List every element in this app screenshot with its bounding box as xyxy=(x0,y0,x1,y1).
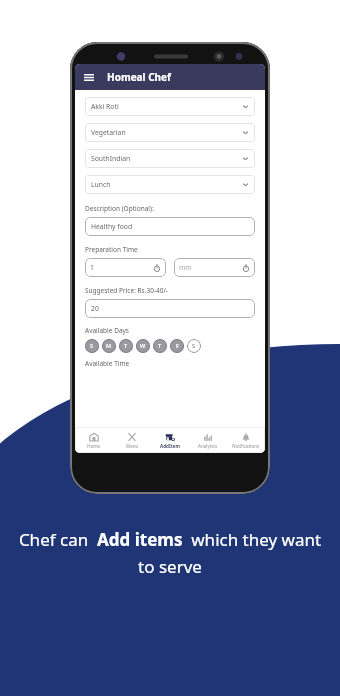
staticText: Lunch xyxy=(91,180,242,189)
staticText: Description (Optional): xyxy=(85,204,154,213)
button[interactable]: S xyxy=(187,339,201,353)
staticText: W xyxy=(140,342,146,350)
button[interactable]: 1 xyxy=(85,258,166,277)
staticText: Available Days xyxy=(85,326,129,335)
staticText: S xyxy=(90,342,94,350)
button[interactable]: S xyxy=(85,339,99,353)
staticText: Available Time xyxy=(85,359,130,368)
button[interactable]: mm xyxy=(174,258,255,277)
button[interactable]: SouthIndian xyxy=(85,149,255,168)
staticText: Homeal Chef xyxy=(107,70,171,84)
button[interactable]: Lunch xyxy=(85,175,255,194)
staticText: 1 xyxy=(90,263,153,272)
staticText: T xyxy=(158,342,162,350)
button[interactable]: Analytics xyxy=(189,427,227,453)
button[interactable]: Vegetarian xyxy=(85,123,255,142)
staticText: Akki Roti xyxy=(91,102,242,111)
staticText: Suggested Price: Rs.30-40/- xyxy=(85,286,168,295)
button[interactable]: Open navigation menu xyxy=(82,70,96,84)
staticText: F xyxy=(176,342,179,350)
staticText: Chef can Add items which they want to se… xyxy=(18,528,322,578)
staticText: Notifications xyxy=(232,443,260,449)
staticText: Menu xyxy=(126,443,139,449)
staticText: Vegetarian xyxy=(91,128,242,137)
other: Pick time xyxy=(153,264,161,272)
staticText: S xyxy=(192,342,196,350)
button[interactable]: Akki Roti xyxy=(85,97,255,116)
button[interactable]: T xyxy=(119,339,133,353)
staticText: Healthy food xyxy=(91,222,133,231)
button[interactable]: 20 xyxy=(85,299,255,318)
button[interactable]: Notifications xyxy=(227,427,265,453)
staticText: AddItem xyxy=(160,443,180,449)
button[interactable]: Healthy food xyxy=(85,217,255,236)
other: Pick time xyxy=(242,264,250,272)
staticText: mm xyxy=(179,263,242,272)
button[interactable]: T xyxy=(153,339,167,353)
staticText: T xyxy=(124,342,128,350)
button[interactable]: F xyxy=(170,339,184,353)
button[interactable]: M xyxy=(102,339,116,353)
staticText: SouthIndian xyxy=(91,154,242,163)
staticText: Analytics xyxy=(198,443,218,449)
button[interactable]: AddItem xyxy=(151,427,189,453)
staticText: M xyxy=(106,342,112,350)
button[interactable]: W xyxy=(136,339,150,353)
staticText: Home xyxy=(87,443,101,449)
button[interactable]: Menu xyxy=(113,427,151,453)
staticText: 20 xyxy=(91,304,99,313)
button[interactable]: Home xyxy=(75,427,113,453)
staticText: Preparation Time xyxy=(85,245,138,254)
